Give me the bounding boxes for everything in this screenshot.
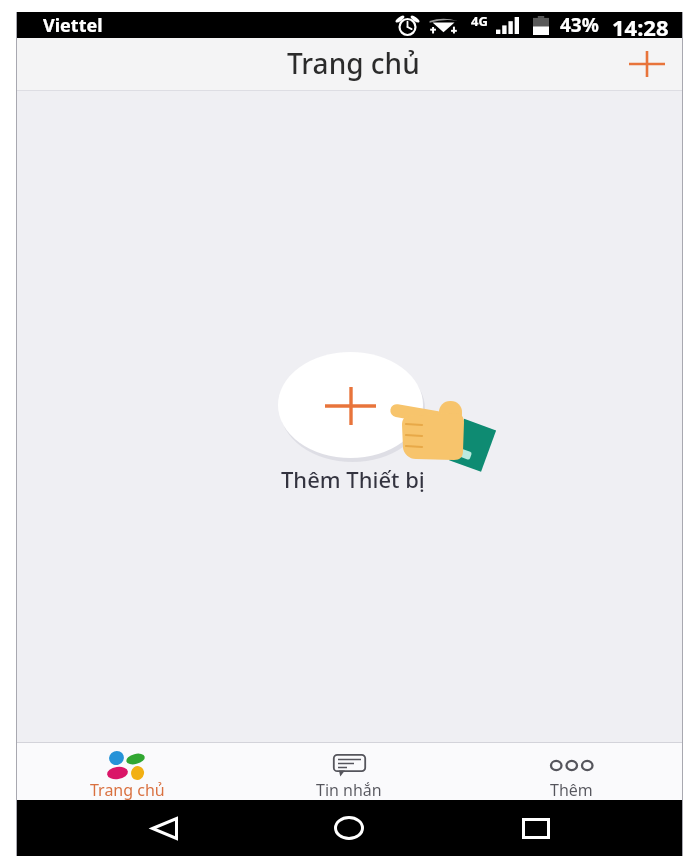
staticText: Thêm (550, 779, 593, 801)
staticText: Thêm Thiết bị (281, 464, 425, 494)
staticText: 43% (560, 12, 599, 38)
button[interactable]: Thêm (460, 743, 682, 800)
staticText: Tin nhắn (316, 779, 382, 801)
button[interactable]: Tin nhắn (238, 743, 460, 800)
button[interactable]: Trang chủ (17, 743, 238, 800)
staticText: Trang chủ (287, 44, 420, 82)
button[interactable]: Recents (514, 806, 558, 850)
button[interactable]: Thêm thiết bị (620, 37, 674, 90)
staticText: Viettel (43, 13, 103, 38)
staticText: Trang chủ (90, 779, 165, 801)
staticText: 14:28 (612, 12, 669, 38)
button[interactable]: Home (327, 806, 371, 850)
button[interactable]: Thêm Thiết bị (268, 352, 508, 497)
staticText: 4G (471, 12, 488, 30)
button[interactable]: Back (142, 806, 186, 850)
